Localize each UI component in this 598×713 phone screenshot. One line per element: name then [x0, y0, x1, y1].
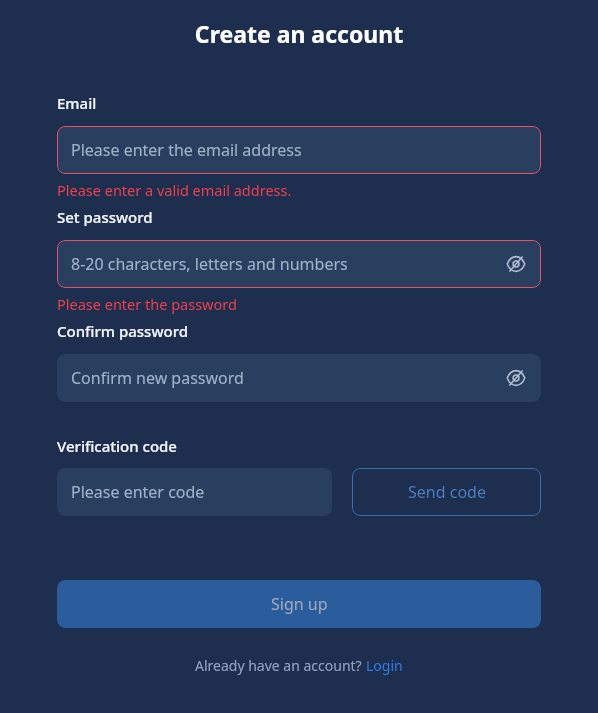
staticText: 8-20 characters, letters and numbers	[71, 253, 505, 275]
button[interactable]: Sign up	[57, 580, 541, 628]
staticText: Please enter the password	[57, 294, 237, 314]
staticText: Please enter a valid email address.	[57, 180, 292, 200]
button[interactable]: Show confirm password	[505, 367, 527, 389]
staticText: Login	[366, 656, 403, 675]
button[interactable]: Send code	[352, 468, 541, 516]
staticText: Confirm new password	[71, 367, 505, 389]
staticText: Already have an account?	[195, 656, 366, 675]
button[interactable]: Login	[366, 656, 403, 675]
staticText: Please enter code	[71, 481, 318, 503]
staticText: Please enter the email address	[71, 139, 527, 161]
button[interactable]: Show password	[505, 253, 527, 275]
button[interactable]: Confirm new password	[57, 354, 541, 402]
button[interactable]: Please enter the email address	[57, 126, 541, 174]
staticText: Create an account	[0, 18, 598, 49]
button[interactable]: 8-20 characters, letters and numbers	[57, 240, 541, 288]
staticText: Set password	[57, 207, 153, 227]
staticText: Email	[57, 93, 97, 113]
staticText: Send code	[408, 481, 486, 503]
staticText: Verification code	[57, 436, 177, 456]
button[interactable]: Please enter code	[57, 468, 332, 516]
staticText: Confirm password	[57, 321, 189, 341]
staticText: Sign up	[271, 593, 328, 615]
